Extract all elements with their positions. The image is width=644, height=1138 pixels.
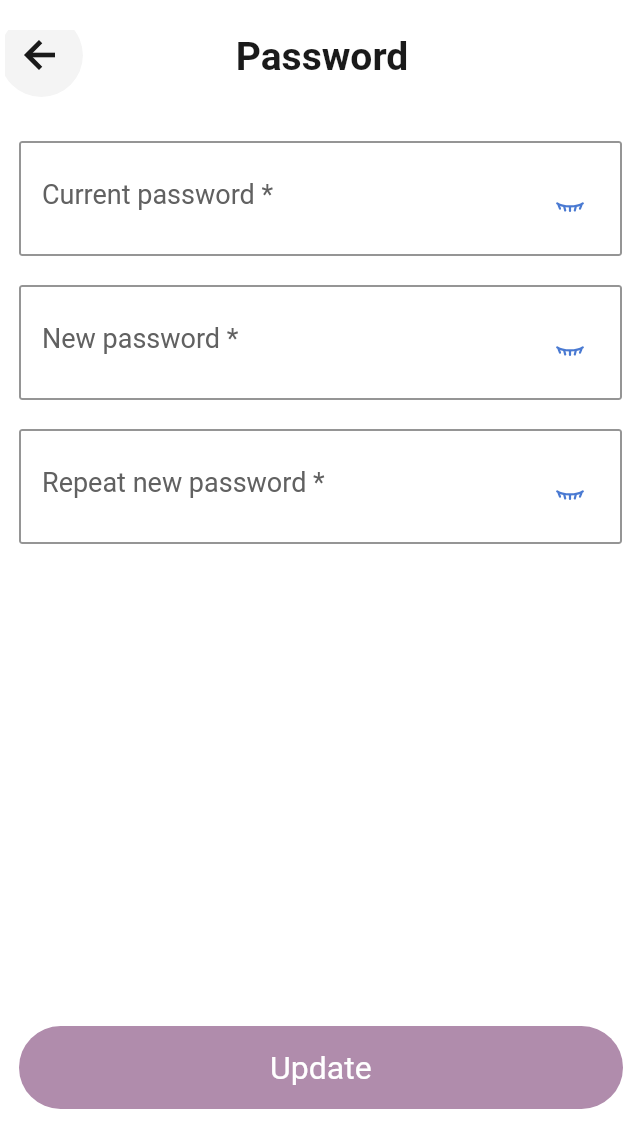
staticText: Update xyxy=(270,1049,372,1087)
button[interactable]: Toggle password visibility xyxy=(547,472,595,520)
staticText: New password * xyxy=(42,323,239,355)
staticText: Current password * xyxy=(42,179,274,211)
staticText: Password xyxy=(0,34,644,80)
button[interactable]: New password * xyxy=(19,285,622,400)
button[interactable]: Toggle password visibility xyxy=(547,328,595,376)
button[interactable]: Toggle password visibility xyxy=(547,184,595,232)
staticText: Repeat new password * xyxy=(42,467,325,499)
button[interactable]: Current password * xyxy=(19,141,622,256)
button[interactable]: Repeat new password * xyxy=(19,429,622,544)
button[interactable]: Update xyxy=(19,1026,623,1109)
button[interactable]: Back xyxy=(5,30,83,97)
